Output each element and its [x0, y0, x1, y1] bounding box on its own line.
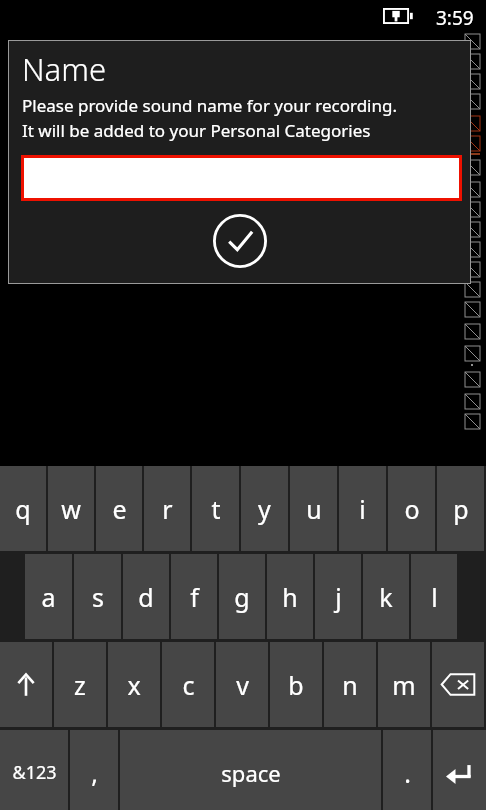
button[interactable]: Shift	[0, 642, 52, 727]
button[interactable]: v	[216, 642, 268, 727]
button[interactable]: g	[219, 554, 265, 639]
staticText: g	[234, 580, 250, 614]
button[interactable]: h	[267, 554, 313, 639]
staticText: z	[74, 668, 86, 702]
staticText: y	[258, 492, 271, 526]
button[interactable]: l	[411, 554, 457, 639]
staticText: l	[431, 580, 438, 614]
button[interactable]: o	[388, 466, 435, 551]
button[interactable]: r	[144, 466, 190, 551]
staticText: j	[335, 580, 342, 614]
button[interactable]: y	[241, 466, 288, 551]
staticText: ,	[91, 756, 98, 790]
staticText: f	[190, 580, 199, 614]
button[interactable]: e	[96, 466, 142, 551]
staticText: Please provide sound name for your recor…	[22, 94, 398, 117]
button[interactable]: a	[25, 554, 72, 639]
button[interactable]: ,	[70, 730, 118, 810]
other: Battery charging	[383, 8, 414, 24]
button[interactable]: c	[162, 642, 214, 727]
staticText: u	[306, 492, 322, 526]
staticText: n	[342, 668, 358, 702]
staticText: e	[112, 492, 127, 526]
button[interactable]	[21, 155, 462, 201]
staticText: v	[236, 668, 249, 702]
button[interactable]: Enter	[433, 730, 486, 810]
staticText: o	[404, 492, 420, 526]
staticText: x	[127, 668, 141, 702]
staticText: s	[92, 580, 104, 614]
staticText: space	[221, 758, 281, 788]
button[interactable]: Backspace	[432, 642, 484, 727]
button[interactable]: i	[339, 466, 386, 551]
staticText: q	[15, 492, 31, 526]
staticText: b	[288, 668, 304, 702]
button[interactable]: j	[315, 554, 361, 639]
button[interactable]: s	[74, 554, 121, 639]
button[interactable]: z	[54, 642, 106, 727]
button[interactable]: f	[171, 554, 217, 639]
button[interactable]: d	[123, 554, 169, 639]
staticText: k	[379, 580, 393, 614]
button[interactable]: x	[108, 642, 160, 727]
staticText: Name	[22, 48, 107, 90]
staticText: i	[359, 492, 366, 526]
staticText: &123	[12, 760, 57, 785]
staticText: h	[282, 580, 298, 614]
staticText: c	[182, 668, 195, 702]
staticText: 3:59	[436, 5, 474, 31]
staticText: w	[61, 492, 81, 526]
staticText: d	[138, 580, 154, 614]
button[interactable]: space	[120, 730, 381, 810]
staticText: It will be added to your Personal Catego…	[22, 119, 371, 142]
staticText: .	[404, 756, 411, 790]
staticText: r	[162, 492, 173, 526]
button[interactable]: &123	[0, 730, 68, 810]
button[interactable]: n	[324, 642, 376, 727]
button[interactable]: .	[383, 730, 431, 810]
staticText: a	[41, 580, 56, 614]
staticText: m	[392, 668, 416, 702]
button[interactable]: q	[0, 466, 46, 551]
button[interactable]: w	[48, 466, 94, 551]
button[interactable]: p	[437, 466, 484, 551]
button[interactable]: b	[270, 642, 322, 727]
staticText: t	[211, 492, 221, 526]
button[interactable]: k	[363, 554, 409, 639]
button[interactable]: t	[192, 466, 239, 551]
button[interactable]: m	[378, 642, 430, 727]
button[interactable]: u	[290, 466, 337, 551]
button[interactable]: Accept	[211, 212, 269, 270]
staticText: p	[453, 492, 469, 526]
